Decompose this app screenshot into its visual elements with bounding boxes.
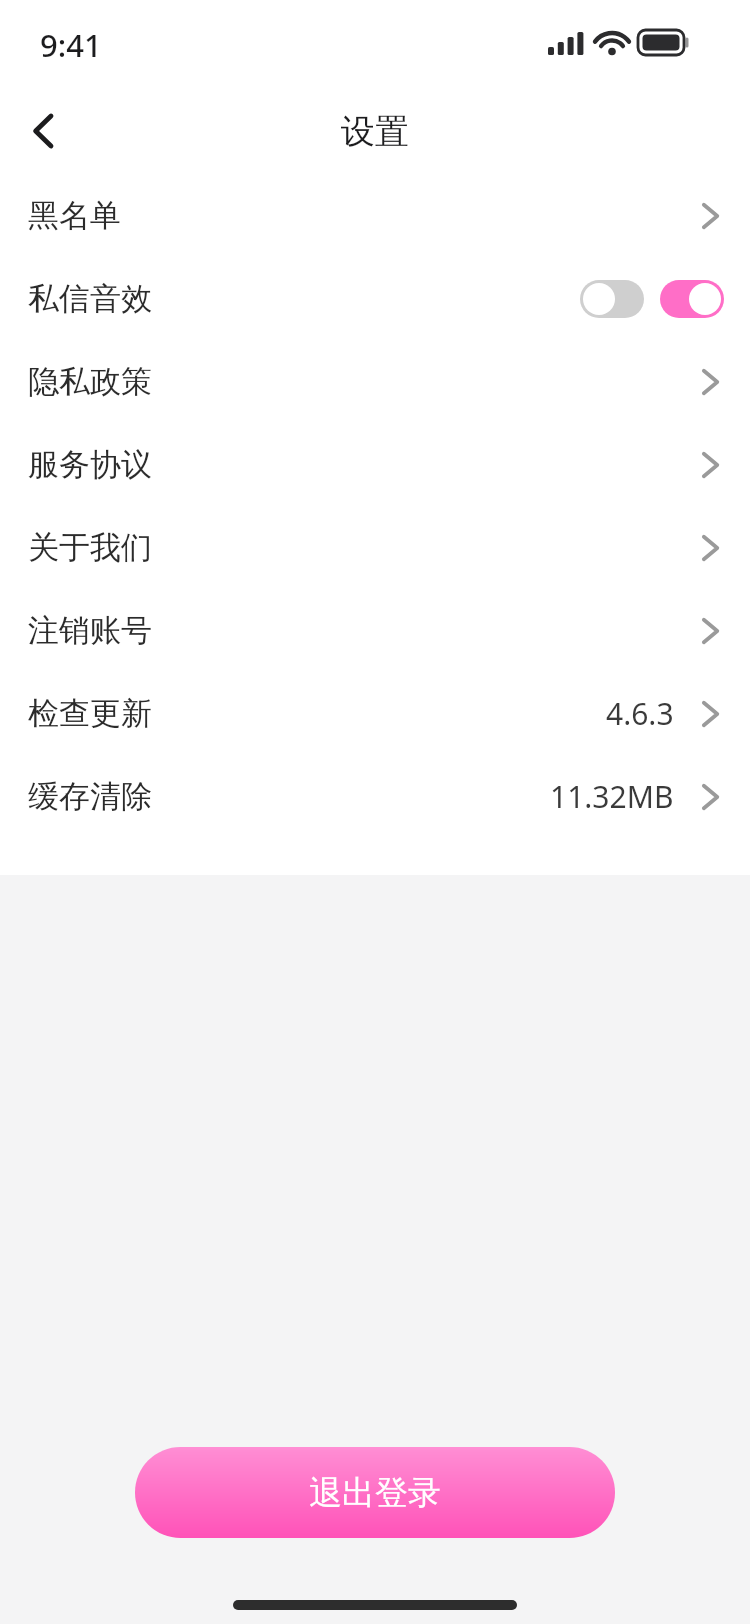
button[interactable]: 返回: [10, 97, 78, 165]
button[interactable]: 检查更新: [0, 672, 750, 755]
button[interactable]: 开启: [660, 280, 724, 318]
staticText: 退出登录: [309, 1472, 441, 1514]
staticText: 4.6.3: [606, 693, 674, 734]
staticText: 设置: [341, 110, 409, 153]
staticText: 黑名单: [28, 196, 121, 235]
button[interactable]: 关闭: [580, 280, 644, 318]
button[interactable]: 私信音效: [0, 257, 750, 340]
staticText: 9:41: [40, 24, 102, 66]
staticText: 缓存清除: [28, 777, 152, 816]
button[interactable]: 关于我们: [0, 506, 750, 589]
staticText: 关于我们: [28, 528, 152, 567]
button[interactable]: 服务协议: [0, 423, 750, 506]
staticText: 隐私政策: [28, 362, 152, 401]
button[interactable]: 隐私政策: [0, 340, 750, 423]
staticText: 11.32MB: [550, 776, 674, 817]
button[interactable]: 缓存清除: [0, 755, 750, 838]
staticText: 服务协议: [28, 445, 152, 484]
button[interactable]: 退出登录: [135, 1447, 615, 1538]
staticText: 私信音效: [28, 279, 152, 318]
staticText: 注销账号: [28, 611, 152, 650]
button[interactable]: 注销账号: [0, 589, 750, 672]
button[interactable]: 黑名单: [0, 174, 750, 257]
staticText: 检查更新: [28, 694, 152, 733]
